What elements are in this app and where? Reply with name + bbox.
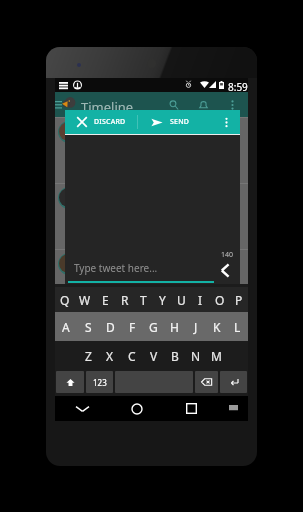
staticText: G <box>149 319 158 335</box>
staticText: N <box>191 348 201 364</box>
button[interactable]: A <box>55 312 77 341</box>
staticText: F <box>129 319 136 335</box>
button[interactable]: L <box>227 312 248 341</box>
staticText: 8:59 <box>228 80 248 94</box>
button[interactable]: Shift <box>56 371 84 393</box>
staticText: O <box>215 292 225 308</box>
staticText: Type tweet here... <box>74 261 158 275</box>
button[interactable]: F <box>121 312 143 341</box>
staticText: L <box>234 319 241 335</box>
button[interactable]: W <box>75 287 95 312</box>
button[interactable]: P <box>229 287 248 312</box>
button[interactable]: R <box>115 287 134 312</box>
button[interactable]: Collapse <box>213 259 237 281</box>
button[interactable]: Switch keyboard <box>218 396 248 421</box>
staticText: W <box>79 292 91 308</box>
staticText: T <box>140 292 147 308</box>
button[interactable]: V <box>143 341 164 370</box>
button[interactable]: Open navigation drawer <box>51 92 66 117</box>
button[interactable]: N <box>185 341 206 370</box>
button[interactable]: E <box>95 287 115 312</box>
button[interactable]: D <box>99 312 121 341</box>
staticText: Q <box>60 292 70 308</box>
button[interactable]: More options <box>221 92 243 117</box>
button[interactable]: I <box>191 287 210 312</box>
staticText: U <box>177 292 186 308</box>
button[interactable]: Z <box>77 341 99 370</box>
button[interactable]: M <box>206 341 227 370</box>
staticText: M <box>211 348 222 364</box>
staticText: K <box>213 319 221 335</box>
staticText: S <box>85 319 92 335</box>
button[interactable]: K <box>206 312 227 341</box>
button[interactable]: Enter <box>220 371 247 393</box>
button[interactable]: Search <box>161 92 186 117</box>
staticText: Y <box>159 292 166 308</box>
button[interactable]: Notifications <box>191 92 216 117</box>
staticText: B <box>171 348 179 364</box>
staticText: C <box>128 348 136 364</box>
button[interactable]: O <box>210 287 229 312</box>
staticText: A <box>62 319 70 335</box>
staticText: Z <box>85 348 92 364</box>
button[interactable]: H <box>164 312 185 341</box>
staticText: H <box>170 319 179 335</box>
button[interactable]: SEND <box>141 110 210 134</box>
button[interactable]: S <box>77 312 99 341</box>
button[interactable]: G <box>143 312 164 341</box>
button[interactable]: Backspace <box>195 371 218 393</box>
button[interactable]: B <box>164 341 185 370</box>
button[interactable]: U <box>172 287 191 312</box>
staticText: P <box>235 292 243 308</box>
staticText: DISCARD <box>94 117 126 127</box>
button[interactable]: T <box>134 287 153 312</box>
staticText: J <box>194 319 198 335</box>
button[interactable]: Recents <box>164 396 218 421</box>
staticText: SEND <box>170 117 190 127</box>
staticText: Timeline <box>81 98 134 116</box>
staticText: V <box>150 348 158 364</box>
button[interactable]: J <box>185 312 206 341</box>
button[interactable]: Y <box>153 287 172 312</box>
button[interactable]: Back <box>55 396 110 421</box>
button[interactable]: X <box>99 341 121 370</box>
staticText: R <box>121 292 129 308</box>
button[interactable]: More options <box>213 110 239 134</box>
staticText: X <box>106 348 114 364</box>
staticText: D <box>106 319 115 335</box>
staticText: E <box>102 292 109 308</box>
staticText: 123 <box>93 377 107 388</box>
button[interactable]: Numbers <box>86 371 113 393</box>
button[interactable]: C <box>121 341 143 370</box>
button[interactable]: DISCARD <box>65 110 137 134</box>
staticText: I <box>198 292 203 308</box>
staticText: 140 <box>221 250 234 260</box>
button[interactable]: Q <box>55 287 75 312</box>
button[interactable]: Home <box>110 396 164 421</box>
